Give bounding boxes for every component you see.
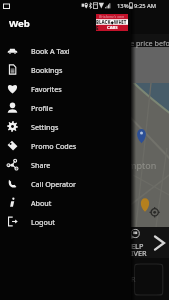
staticText: Call Operator <box>31 179 77 189</box>
staticText: Settings <box>31 122 59 132</box>
staticText: About <box>31 198 52 208</box>
button[interactable]: Black and White Cabs logo <box>96 14 128 31</box>
button[interactable]: About <box>0 193 131 212</box>
button[interactable]: Promo Codes <box>0 136 131 155</box>
staticText: Share <box>31 160 51 170</box>
staticText: R <box>131 274 136 284</box>
button[interactable]: Favorites <box>0 79 131 98</box>
button[interactable]: Profile <box>0 98 131 117</box>
staticText: Web <box>9 17 30 30</box>
staticText: mpton <box>128 159 157 171</box>
button[interactable]: Settings <box>0 117 131 136</box>
button[interactable]: Book A Taxi <box>0 41 131 60</box>
staticText: e price befo <box>130 38 169 48</box>
staticText: BLACK◆WHITE <box>96 19 128 31</box>
staticText: Favorites <box>31 84 62 94</box>
button[interactable]: Logout <box>0 212 131 231</box>
staticText: Bookings <box>31 65 63 75</box>
staticText: ELP <box>131 241 144 251</box>
staticText: 13% <box>117 2 129 10</box>
staticText: IVER <box>131 248 147 258</box>
staticText: Book A Taxi <box>31 46 70 56</box>
staticText: Logout <box>31 217 55 227</box>
staticText: CABS <box>107 25 118 31</box>
staticText: 9:25 AM <box>134 2 157 10</box>
button[interactable]: Bookings <box>0 60 131 79</box>
button[interactable]: Share <box>0 155 131 174</box>
staticText: Profile <box>31 103 53 113</box>
staticText: Brisbane's own <box>99 14 125 19</box>
button[interactable]: Call Operator <box>0 174 131 193</box>
staticText: Promo Codes <box>31 141 77 151</box>
